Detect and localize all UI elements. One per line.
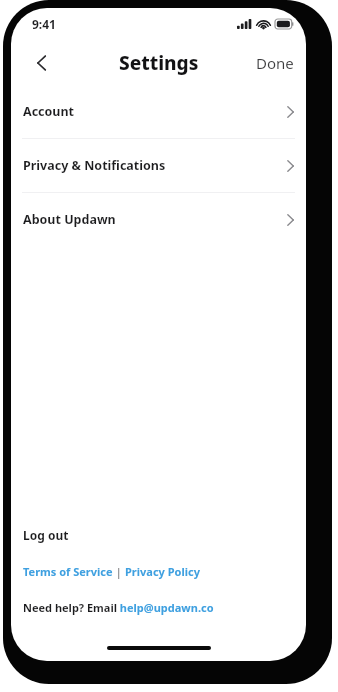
button[interactable]: Privacy Policy bbox=[125, 562, 200, 581]
staticText: About Updawn bbox=[23, 211, 116, 228]
button[interactable]: Terms of Service bbox=[23, 562, 113, 581]
staticText: | bbox=[113, 564, 125, 579]
button[interactable]: Log out bbox=[23, 525, 69, 545]
button[interactable]: Account bbox=[11, 85, 306, 138]
button[interactable]: Privacy & Notifications bbox=[11, 139, 306, 192]
button[interactable]: About Updawn bbox=[11, 193, 306, 246]
staticText: Privacy Policy bbox=[125, 564, 200, 579]
button[interactable]: Need help? Email help@updawn.co bbox=[23, 598, 214, 617]
staticText: Terms of Service bbox=[23, 564, 113, 579]
staticText: 9:41 bbox=[32, 16, 56, 32]
staticText: Settings bbox=[119, 50, 199, 76]
button[interactable]: Done bbox=[244, 45, 306, 81]
staticText: Account bbox=[23, 103, 75, 120]
staticText: Done bbox=[256, 53, 294, 73]
staticText: Log out bbox=[23, 527, 69, 543]
staticText: Privacy & Notifications bbox=[23, 157, 166, 174]
staticText: Need help? Email help@updawn.co bbox=[23, 600, 214, 615]
button[interactable]: Back bbox=[23, 45, 59, 81]
